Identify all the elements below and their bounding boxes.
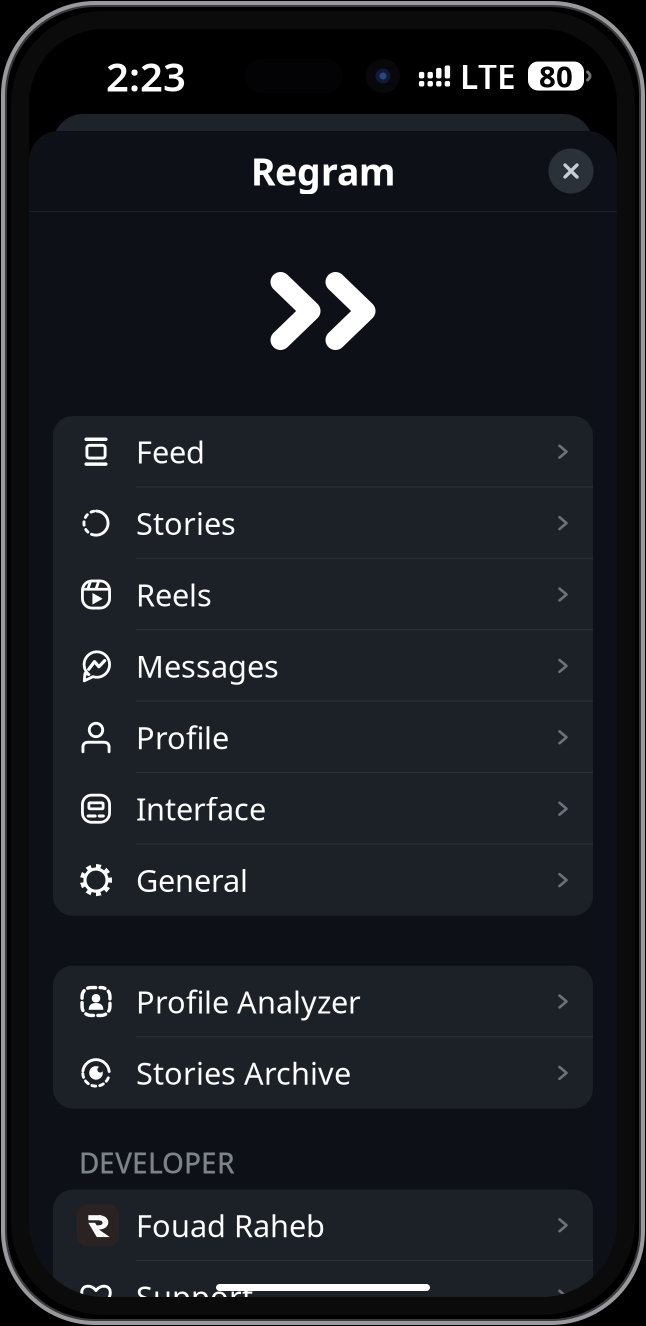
button[interactable]: Stories	[53, 487, 593, 559]
staticText: DEVELOPER	[79, 1144, 235, 1181]
staticText: LTE	[460, 54, 516, 98]
button[interactable]: Profile Analyzer	[53, 966, 593, 1037]
staticText: 2:23	[106, 49, 186, 102]
button[interactable]: Close	[543, 143, 599, 199]
button[interactable]: Interface	[53, 773, 593, 844]
button[interactable]: Profile	[53, 702, 593, 773]
staticText: Reels	[136, 574, 212, 615]
staticText: Support	[136, 1276, 253, 1317]
button[interactable]: Messages	[53, 630, 593, 702]
button[interactable]: Reels	[53, 559, 593, 630]
staticText: Stories Archive	[136, 1052, 351, 1093]
staticText: Interface	[136, 788, 266, 829]
staticText: Fouad Raheb	[136, 1205, 325, 1246]
staticText: Regram	[251, 146, 395, 196]
staticText: 80	[539, 56, 573, 95]
staticText: Feed	[136, 431, 205, 472]
staticText: Messages	[136, 645, 279, 686]
staticText: General	[136, 860, 248, 900]
button[interactable]: Feed	[53, 416, 593, 487]
button[interactable]: Stories Archive	[53, 1037, 593, 1109]
button[interactable]: Support	[53, 1261, 593, 1326]
button[interactable]: General	[53, 844, 593, 916]
staticText: Profile	[136, 717, 229, 758]
staticText: Stories	[136, 503, 236, 543]
staticText: Profile Analyzer	[136, 981, 361, 1022]
button[interactable]: Fouad Raheb	[53, 1190, 593, 1261]
